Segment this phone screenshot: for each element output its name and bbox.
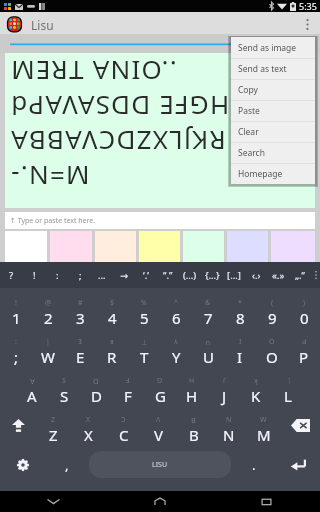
button[interactable]: ⊥ [128, 328, 160, 367]
staticText: . [252, 456, 256, 474]
button[interactable]: O [256, 328, 288, 367]
button[interactable]: * [224, 288, 256, 328]
staticText: G [155, 386, 166, 406]
button[interactable]: $ [96, 288, 128, 328]
button[interactable]: Send as image [231, 37, 315, 58]
button[interactable]: ᗡ [80, 367, 112, 406]
staticText: ᴚ [110, 337, 114, 347]
button[interactable]: Recents [213, 491, 320, 512]
button[interactable]: X [71, 406, 106, 445]
button[interactable]: ( [256, 288, 288, 328]
button[interactable]: Ԁ [288, 328, 320, 367]
button[interactable]: „.” [289, 262, 311, 288]
button[interactable]: ꓭ [176, 406, 211, 445]
staticText: , [65, 456, 69, 474]
staticText: M [257, 425, 271, 445]
staticText: 0 [300, 308, 309, 328]
staticText: 5 [140, 308, 149, 328]
button[interactable]: ſ [208, 367, 240, 406]
button[interactable]: LISU [89, 451, 231, 478]
button[interactable]: Clear [231, 122, 315, 142]
button[interactable]: . [232, 445, 275, 484]
staticText: Z [51, 415, 56, 425]
button[interactable]: Λ [141, 406, 176, 445]
staticText: # [78, 298, 83, 308]
button[interactable]: ; [69, 262, 91, 288]
button[interactable]: Shift [0, 406, 36, 445]
button[interactable]: ˥ [272, 367, 304, 406]
staticText: F [124, 386, 132, 406]
button[interactable]: (…) [179, 262, 201, 288]
button[interactable]: ) [288, 288, 320, 328]
button[interactable]: Paste [231, 101, 315, 121]
button[interactable]: … [91, 262, 113, 288]
button[interactable]: ^ [160, 288, 192, 328]
staticText: * [238, 298, 242, 308]
button[interactable]: : [46, 262, 69, 288]
button[interactable]: {…} [201, 262, 223, 288]
button[interactable]: ? [0, 262, 23, 288]
staticText: ⅄ [174, 337, 178, 347]
button[interactable]: ∀ [16, 367, 48, 406]
button[interactable]: Ⅎ [112, 367, 144, 406]
button[interactable]: N [211, 406, 246, 445]
button[interactable]: : [0, 328, 32, 367]
staticText: ..OINA TREM [10, 54, 177, 89]
button[interactable]: % [128, 288, 160, 328]
button[interactable]: Search [231, 143, 315, 163]
staticText: 6 [172, 308, 181, 328]
button[interactable]: More options [294, 12, 320, 36]
button[interactable]: Back [0, 491, 106, 512]
staticText: W [260, 415, 267, 425]
button[interactable]: ᴚ [96, 328, 128, 367]
staticText: S [62, 376, 66, 386]
button[interactable]: Ɔ [106, 406, 141, 445]
button[interactable]: Homepage [231, 164, 315, 184]
button[interactable]: Send as text [231, 59, 315, 79]
button[interactable]: […] [223, 262, 245, 288]
button[interactable]: # [64, 288, 96, 328]
button[interactable]: “.” [157, 262, 179, 288]
button[interactable]: I [224, 328, 256, 367]
staticText: LISU [152, 460, 168, 470]
button[interactable]: Home [106, 491, 213, 512]
button[interactable]: Ǝ [64, 328, 96, 367]
button[interactable]: ʞ [240, 367, 272, 406]
button[interactable]: ! [0, 288, 32, 328]
button[interactable]: ‹.› [245, 262, 267, 288]
button[interactable]: ‘.’ [135, 262, 157, 288]
staticText: ∩ [205, 339, 211, 347]
staticText: (…) [183, 269, 197, 282]
button[interactable]: W [246, 406, 281, 445]
button[interactable]: Enter [275, 445, 320, 484]
staticText: X [84, 425, 93, 445]
button[interactable]: Settings [0, 445, 45, 484]
button[interactable]: Z [36, 406, 71, 445]
button[interactable]: ∩ [192, 328, 224, 367]
button[interactable]: S [48, 367, 80, 406]
button[interactable]: , [45, 445, 88, 484]
staticText: Ⅎ [126, 376, 130, 386]
button[interactable]: Copy [231, 80, 315, 100]
button[interactable]: @ [32, 288, 64, 328]
button[interactable]: ↑ Type or paste text here. [5, 212, 315, 229]
button[interactable]: Backspace [281, 406, 320, 445]
button[interactable]: H [176, 367, 208, 406]
button[interactable]: M=N.- [5, 53, 315, 208]
button[interactable]: → [113, 262, 135, 288]
staticText: RKJLXZDCVABBA [10, 124, 226, 159]
button[interactable]: ⅁ [144, 367, 176, 406]
button[interactable]: ⅄ [160, 328, 192, 367]
button[interactable]: | [32, 328, 64, 367]
button[interactable]: ! [23, 262, 46, 288]
button[interactable]: More symbols [311, 262, 320, 288]
button[interactable]: «.» [267, 262, 289, 288]
button[interactable]: & [192, 288, 224, 328]
